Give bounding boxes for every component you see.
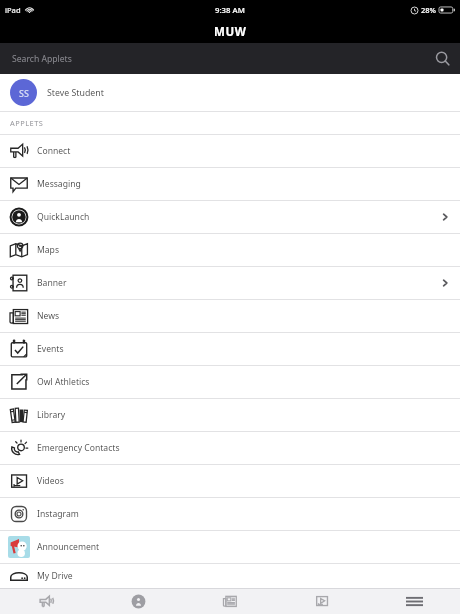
button[interactable]: Announcement bbox=[0, 531, 460, 563]
staticText: QuickLaunch bbox=[37, 211, 90, 223]
button[interactable]: SS bbox=[0, 74, 460, 111]
staticText: iPad bbox=[5, 5, 21, 15]
button[interactable]: Library bbox=[0, 399, 460, 431]
staticText: News bbox=[37, 310, 60, 322]
staticText: Messaging bbox=[37, 178, 81, 190]
other: Search bbox=[435, 51, 450, 66]
staticText: SS bbox=[19, 87, 29, 99]
staticText: Emergency Contacts bbox=[37, 442, 120, 454]
button[interactable]: News bbox=[0, 300, 460, 332]
button[interactable]: QuickLaunch bbox=[0, 201, 460, 233]
staticText: Instagram bbox=[37, 508, 79, 520]
staticText: Announcement bbox=[37, 541, 100, 553]
staticText: Events bbox=[37, 343, 64, 355]
staticText: 9:38 AM bbox=[215, 5, 245, 16]
button[interactable]: Banner bbox=[0, 267, 460, 299]
button[interactable]: Messaging bbox=[0, 168, 460, 200]
button[interactable]: Owl Athletics bbox=[0, 366, 460, 398]
button[interactable]: Search Applets bbox=[0, 43, 460, 74]
button[interactable]: Maps bbox=[0, 234, 460, 266]
button[interactable]: Videos bbox=[276, 588, 368, 614]
staticText: Steve Student bbox=[47, 87, 104, 99]
staticText: 28% bbox=[421, 5, 436, 15]
staticText: Connect bbox=[37, 145, 71, 157]
button[interactable]: Emergency Contacts bbox=[0, 432, 460, 464]
staticText: Maps bbox=[37, 244, 60, 256]
button[interactable]: QuickLaunch bbox=[92, 588, 184, 614]
staticText: APPLETS bbox=[10, 118, 44, 128]
staticText: Videos bbox=[37, 475, 64, 487]
button[interactable]: Events bbox=[0, 333, 460, 365]
button[interactable]: Connect bbox=[0, 135, 460, 167]
button[interactable]: My Drive bbox=[0, 564, 460, 588]
button[interactable]: Videos bbox=[0, 465, 460, 497]
staticText: Banner bbox=[37, 277, 67, 289]
staticText: Search Applets bbox=[12, 53, 72, 65]
button[interactable]: Menu bbox=[368, 588, 460, 614]
button[interactable]: News bbox=[184, 588, 276, 614]
staticText: MUW bbox=[214, 24, 247, 40]
button[interactable]: Connect bbox=[0, 588, 92, 614]
staticText: Owl Athletics bbox=[37, 376, 90, 388]
staticText: My Drive bbox=[37, 570, 73, 582]
staticText: Library bbox=[37, 409, 66, 421]
button[interactable]: Instagram bbox=[0, 498, 460, 530]
